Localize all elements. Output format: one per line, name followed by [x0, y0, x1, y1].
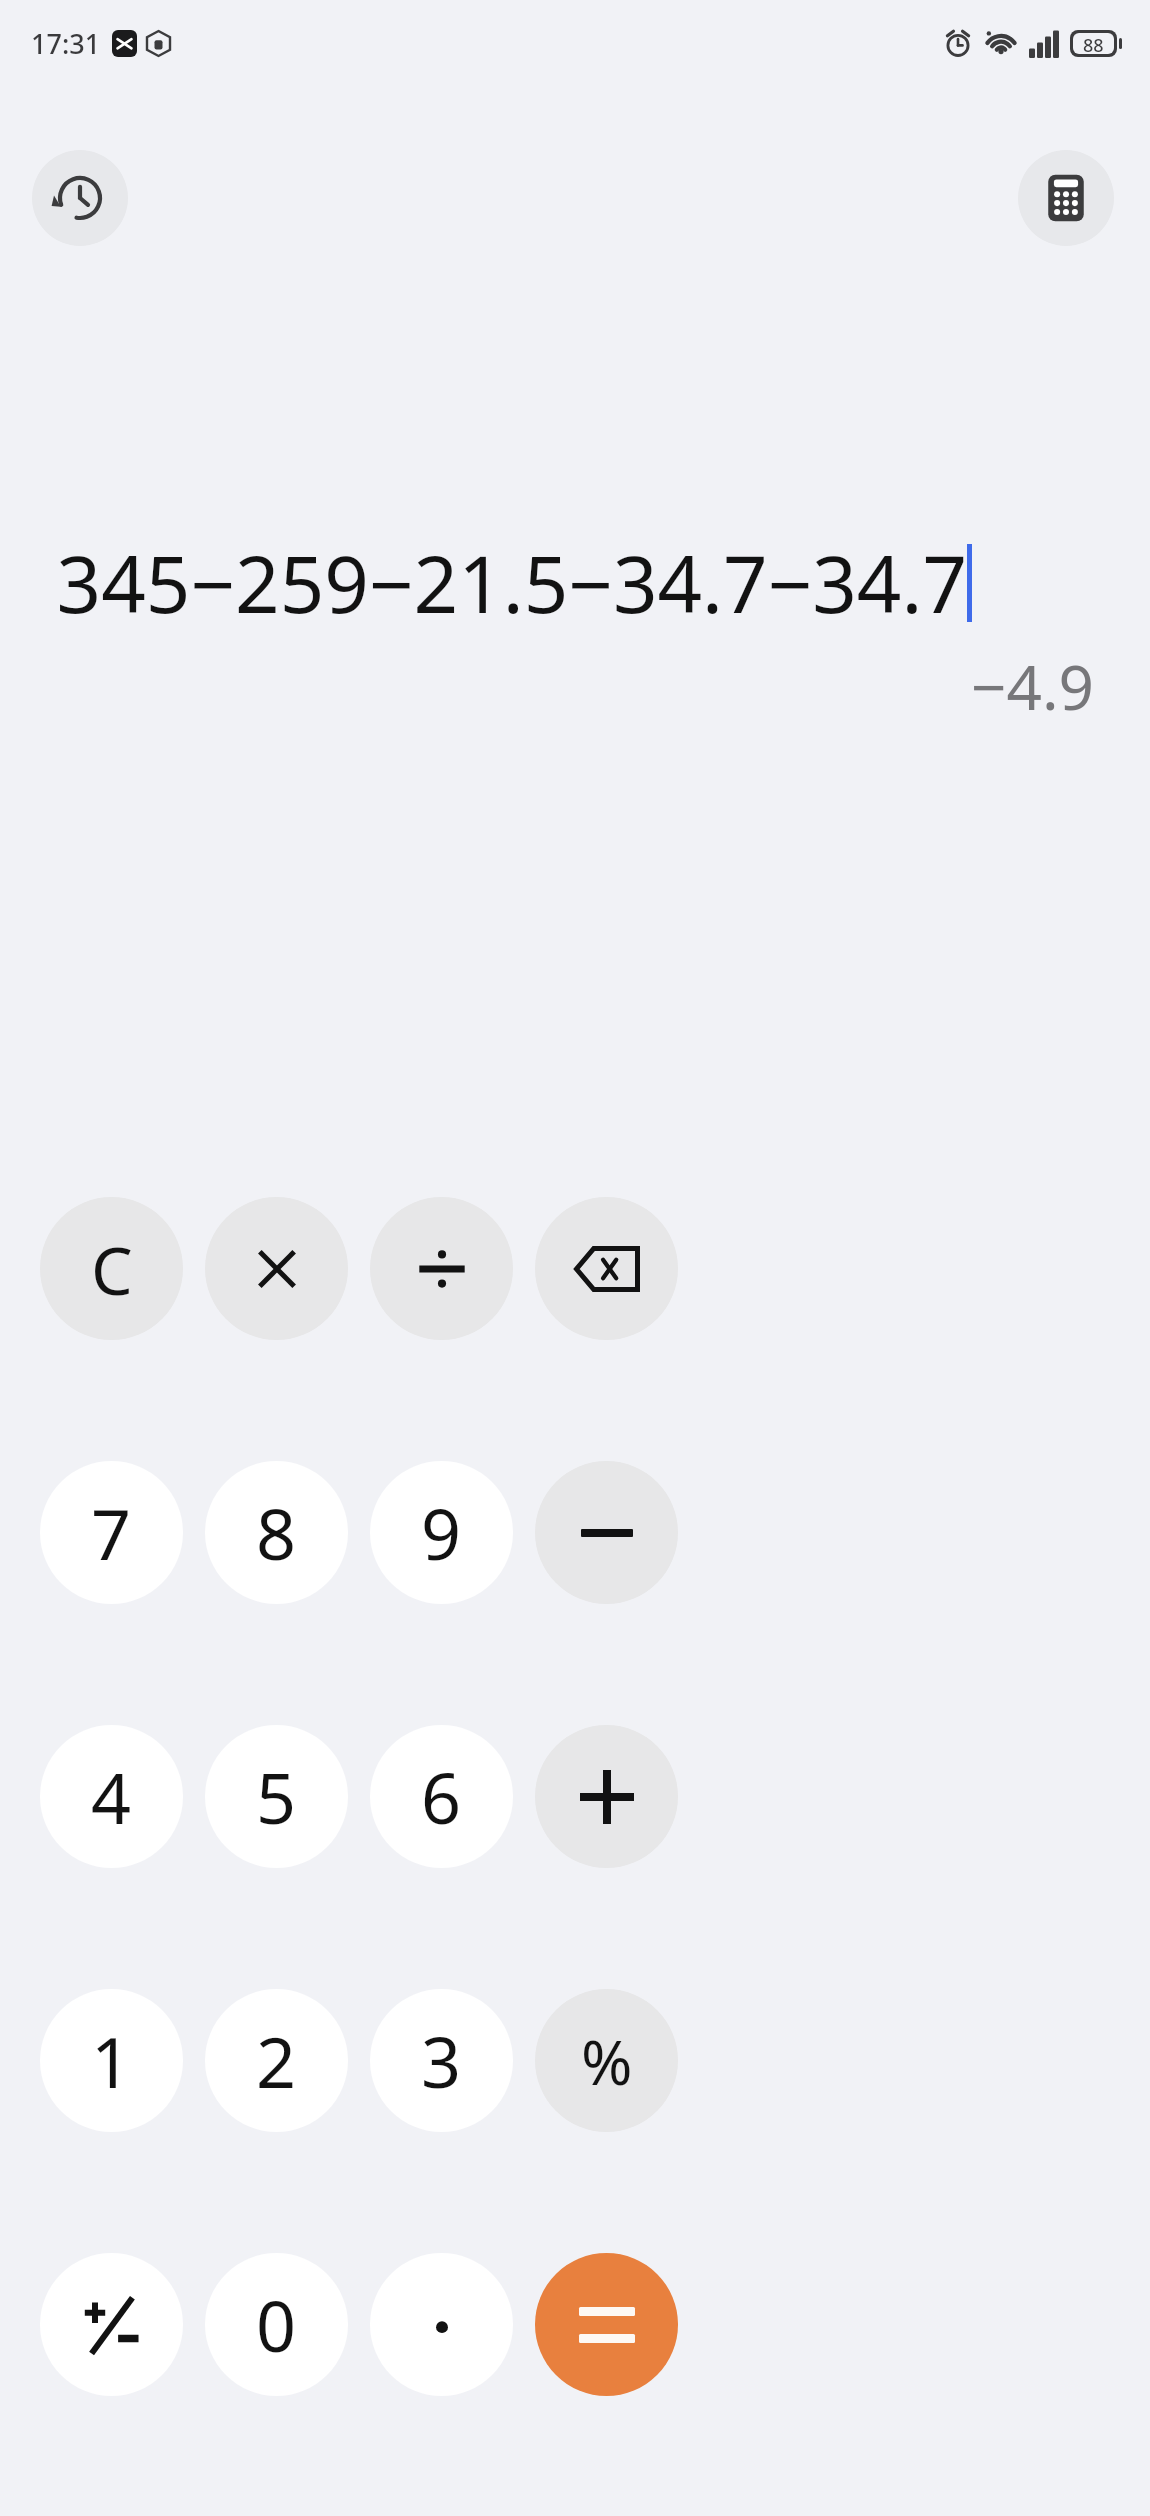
staticText: 88 — [1083, 33, 1104, 54]
button[interactable]: Plus minus sign — [40, 2253, 183, 2396]
button[interactable]: % — [535, 1989, 678, 2132]
button[interactable]: C — [40, 1197, 183, 1340]
button[interactable]: 4 — [40, 1725, 183, 1868]
staticText: 8 — [256, 1485, 297, 1580]
button[interactable]: 1 — [40, 1989, 183, 2132]
button[interactable]: 8 — [205, 1461, 348, 1604]
staticText: 9 — [421, 1485, 462, 1580]
button[interactable]: 0 — [205, 2253, 348, 2396]
staticText: C — [91, 1224, 133, 1314]
staticText: 4 — [91, 1749, 132, 1844]
button[interactable]: 3 — [370, 1989, 513, 2132]
button[interactable]: 2 — [205, 1989, 348, 2132]
staticText: 345−259−21.5−34.7−34.7 — [56, 530, 967, 636]
button[interactable] — [370, 1197, 513, 1340]
button[interactable] — [205, 1197, 348, 1340]
staticText: 5 — [256, 1749, 297, 1844]
staticText: 2 — [256, 2013, 297, 2108]
staticText: 0 — [256, 2277, 297, 2372]
staticText: 17:31 — [31, 25, 101, 62]
button[interactable]: 9 — [370, 1461, 513, 1604]
staticText: % — [581, 2019, 633, 2103]
button[interactable]: Equals — [535, 2253, 678, 2396]
staticText: −4.9 — [56, 644, 1094, 728]
button[interactable] — [535, 1461, 678, 1604]
staticText: 7 — [91, 1485, 132, 1580]
staticText: 6 — [421, 1749, 462, 1844]
staticText: 1 — [91, 2013, 132, 2108]
button[interactable] — [535, 1725, 678, 1868]
button[interactable]: Calculator mode — [1018, 150, 1114, 246]
button[interactable]: 6 — [370, 1725, 513, 1868]
button[interactable]: Backspace — [535, 1197, 678, 1340]
button[interactable]: 7 — [40, 1461, 183, 1604]
button[interactable]: History — [32, 150, 128, 246]
button[interactable]: 5 — [205, 1725, 348, 1868]
staticText: 3 — [421, 2013, 462, 2108]
button[interactable]: Decimal point — [370, 2253, 513, 2396]
